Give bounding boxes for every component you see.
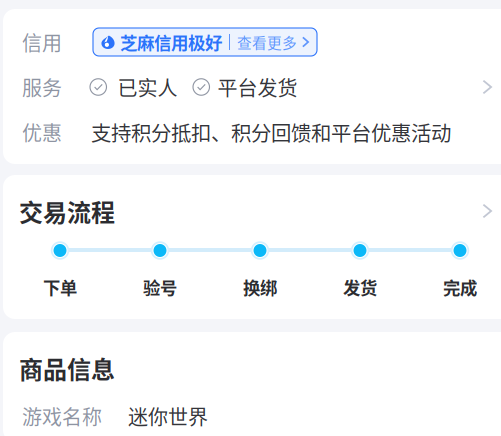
staticText: 换绑	[243, 274, 277, 300]
staticText: 发货	[343, 274, 377, 300]
staticText: 完成	[443, 274, 477, 300]
staticText: 芝麻信用极好	[120, 29, 222, 55]
staticText: 查看更多	[237, 31, 297, 53]
staticText: 优惠	[22, 117, 62, 146]
staticText: 已实人	[117, 72, 177, 101]
staticText: 平台发货	[217, 72, 297, 101]
staticText: 迷你世界	[128, 401, 208, 430]
button[interactable]: 芝麻信用极好	[93, 28, 317, 56]
staticText: 服务	[22, 72, 62, 101]
staticText: 信用	[22, 27, 62, 56]
staticText: 验号	[143, 274, 177, 300]
button[interactable]: 服务	[22, 73, 498, 101]
staticText: 交易流程	[19, 194, 115, 228]
button[interactable]: 交易流程	[19, 196, 498, 226]
staticText: 下单	[43, 274, 77, 300]
staticText: 游戏名称	[22, 401, 102, 430]
staticText: 商品信息	[19, 351, 115, 385]
staticText: 支持积分抵扣、积分回馈和平台优惠活动	[91, 117, 451, 147]
